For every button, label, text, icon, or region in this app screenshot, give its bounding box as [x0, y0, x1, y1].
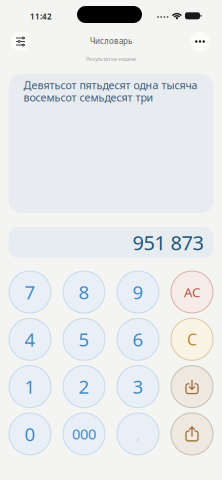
button[interactable]: 8 [63, 271, 105, 313]
button[interactable]: 0 [9, 413, 51, 455]
staticText: Девятьсот пятьдесят одна тысяча [23, 78, 197, 92]
button[interactable]: C [171, 318, 213, 360]
staticText: AC [184, 283, 200, 301]
button[interactable]: 5 [63, 318, 105, 360]
button[interactable]: 2 [63, 366, 105, 408]
staticText: 5 [78, 327, 89, 352]
button[interactable]: 7 [9, 271, 51, 313]
button[interactable]: 4 [9, 318, 51, 360]
button[interactable]: Share [171, 413, 213, 455]
staticText: 1 [24, 374, 35, 399]
staticText: 951 873 [132, 229, 203, 256]
button[interactable]: Filters [10, 31, 30, 51]
button[interactable]: , [117, 413, 159, 455]
staticText: 6 [132, 327, 143, 352]
staticText: восемьсот семьдесят три [23, 90, 153, 104]
staticText: 8 [78, 280, 89, 304]
staticText: , [136, 424, 140, 444]
staticText: 3 [132, 374, 143, 399]
staticText: 11:42 [30, 11, 52, 22]
staticText: 9 [132, 280, 143, 304]
button[interactable]: More options [190, 31, 210, 51]
button[interactable]: 9 [117, 271, 159, 313]
button[interactable]: 000 [63, 413, 105, 455]
button[interactable]: AC [171, 271, 213, 313]
staticText: 000 [72, 424, 96, 444]
staticText: C [187, 329, 197, 350]
staticText: Результат на экране [86, 55, 136, 63]
staticText: Числоварь [90, 36, 132, 46]
button[interactable]: 6 [117, 318, 159, 360]
staticText: 7 [24, 280, 35, 304]
staticText: 0 [24, 421, 35, 446]
button[interactable]: 1 [9, 366, 51, 408]
staticText: 2 [78, 374, 89, 399]
staticText: 4 [24, 327, 35, 352]
button[interactable]: Save [171, 366, 213, 408]
button[interactable]: 3 [117, 366, 159, 408]
